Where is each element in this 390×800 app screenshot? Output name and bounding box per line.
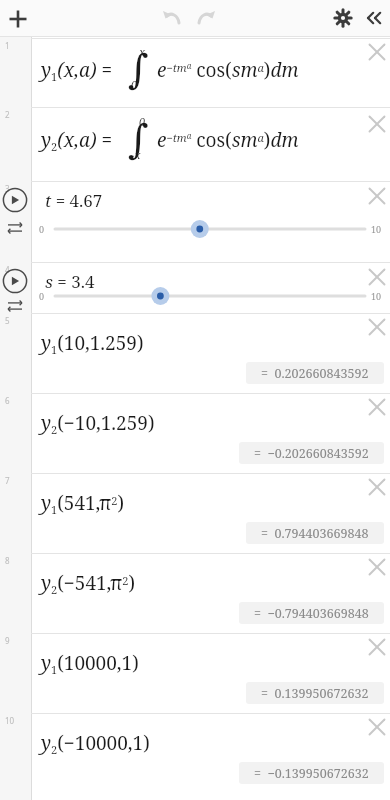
button[interactable]: Delete expression — [362, 552, 390, 582]
staticText: = −0.794403669848 — [254, 605, 369, 622]
staticText: t = 4.67 — [45, 189, 103, 212]
button[interactable]: Undo — [159, 4, 189, 34]
button[interactable]: = −0.794403669848 — [239, 602, 384, 624]
staticText: 9 — [5, 635, 10, 646]
staticText: = −0.139950672632 — [254, 765, 369, 782]
button[interactable]: Delete expression — [362, 392, 390, 422]
staticText: y1(10000,1) — [41, 650, 139, 677]
staticText: = 0.794403669848 — [261, 525, 369, 542]
staticText: 10 — [371, 290, 382, 302]
staticText: y2(−541,π2) — [41, 570, 136, 597]
button[interactable]: Slider settings — [5, 296, 25, 316]
staticText: ∫ — [128, 116, 149, 163]
button[interactable]: Delete expression — [362, 262, 390, 292]
button[interactable]: Delete expression — [362, 181, 390, 211]
staticText: s = 3.4 — [45, 270, 95, 293]
staticText: = 0.139950672632 — [261, 685, 369, 702]
staticText: 10 — [5, 715, 15, 726]
button[interactable]: Redo — [189, 4, 219, 34]
staticText: e−tma cos(sma)dm — [157, 127, 299, 153]
staticText: 0 — [39, 290, 45, 302]
button[interactable]: Slider — [55, 218, 365, 240]
staticText: y1(541,π2) — [41, 490, 125, 517]
staticText: 0 — [131, 77, 138, 92]
staticText: −x — [131, 147, 141, 162]
button[interactable] — [32, 108, 390, 180]
staticText: y2(−10000,1) — [41, 730, 150, 757]
staticText: 0 — [139, 114, 146, 129]
button[interactable]: = 0.202660843592 — [246, 362, 384, 384]
button[interactable] — [32, 634, 390, 713]
staticText: y1(10,1.259) — [41, 330, 144, 357]
staticText: 0 — [39, 223, 45, 235]
staticText: 1 — [5, 40, 10, 51]
button[interactable]: Slider settings — [5, 218, 25, 238]
staticText: = −0.202660843592 — [254, 445, 369, 462]
button[interactable] — [32, 714, 390, 793]
staticText: 7 — [5, 475, 10, 486]
button[interactable]: Delete expression — [362, 312, 390, 342]
button[interactable] — [32, 394, 390, 473]
staticText: y2(x,a) = — [41, 127, 117, 154]
button[interactable]: Delete expression — [362, 472, 390, 502]
button[interactable]: = 0.139950672632 — [246, 682, 384, 704]
button[interactable]: Play slider animation — [2, 187, 28, 213]
button[interactable]: = −0.139950672632 — [239, 762, 384, 784]
staticText: 3 — [5, 183, 10, 194]
button[interactable]: Slider — [55, 285, 365, 307]
staticText: 6 — [5, 395, 10, 406]
button[interactable]: Settings — [328, 3, 358, 33]
button[interactable] — [32, 314, 390, 393]
staticText: x — [139, 44, 146, 59]
button[interactable]: Collapse panel — [357, 3, 387, 33]
staticText: 2 — [5, 109, 10, 120]
button[interactable] — [32, 39, 390, 106]
staticText: 8 — [5, 555, 10, 566]
button[interactable]: Delete expression — [362, 712, 390, 742]
button[interactable] — [32, 474, 390, 553]
staticText: y1(x,a) = — [41, 57, 117, 84]
staticText: y2(−10,1.259) — [41, 410, 155, 437]
staticText: 5 — [5, 315, 10, 326]
button[interactable]: = −0.202660843592 — [239, 442, 384, 464]
button[interactable]: Play slider animation — [2, 268, 28, 294]
staticText: e−tma cos(sma)dm — [157, 57, 299, 83]
button[interactable]: Delete expression — [362, 632, 390, 662]
button[interactable]: Add expression — [2, 3, 34, 35]
button[interactable]: Delete expression — [362, 37, 390, 67]
staticText: 10 — [371, 223, 382, 235]
button[interactable]: = 0.794403669848 — [246, 522, 384, 544]
staticText: ∫ — [128, 46, 149, 93]
staticText: = 0.202660843592 — [261, 365, 369, 382]
staticText: 4 — [5, 264, 10, 275]
button[interactable]: Delete expression — [362, 109, 390, 139]
button[interactable] — [32, 554, 390, 633]
